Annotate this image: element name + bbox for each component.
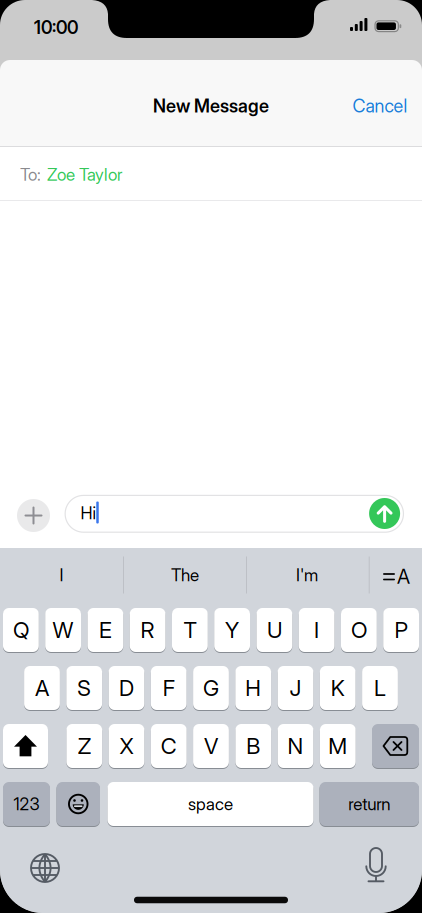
staticText: I	[314, 617, 319, 643]
button[interactable]: T	[172, 607, 208, 653]
staticText: R	[141, 617, 155, 643]
button[interactable]: S	[66, 665, 102, 711]
button[interactable]: To:	[0, 148, 422, 201]
staticText: A	[397, 564, 410, 589]
button[interactable]: Y	[214, 607, 250, 653]
button[interactable]	[56, 781, 100, 827]
staticText: H	[245, 675, 261, 701]
staticText: 123	[13, 794, 39, 814]
button[interactable]: The	[124, 552, 246, 598]
button[interactable]: X	[109, 723, 144, 769]
button[interactable]: P	[383, 607, 419, 653]
button[interactable]: A	[379, 564, 417, 588]
button[interactable]: V	[193, 723, 229, 769]
staticText: Y	[225, 617, 239, 643]
staticText: F	[163, 675, 175, 701]
staticText: V	[204, 733, 218, 759]
button[interactable]	[3, 723, 48, 769]
staticText: W	[53, 617, 74, 643]
button[interactable]: C	[151, 723, 187, 769]
staticText: Hi	[80, 503, 96, 523]
staticText: G	[203, 675, 219, 701]
button[interactable]: return	[319, 781, 419, 827]
staticText: To:	[20, 164, 41, 185]
button[interactable]: space	[107, 781, 313, 827]
staticText: S	[77, 675, 91, 701]
button[interactable]: E	[87, 607, 123, 653]
button[interactable]: N	[278, 723, 313, 769]
button[interactable]	[23, 846, 67, 890]
button[interactable]: Z	[66, 723, 102, 769]
staticText: 10:00	[34, 17, 78, 38]
button[interactable]: K	[320, 665, 356, 711]
staticText: New Message	[153, 95, 269, 117]
button[interactable]: M	[320, 723, 356, 769]
button[interactable]: H	[235, 665, 271, 711]
button[interactable]: R	[130, 607, 165, 653]
button[interactable]: W	[45, 607, 81, 653]
button[interactable]: L	[362, 665, 398, 711]
staticText: J	[289, 675, 301, 701]
staticText: O	[351, 617, 367, 643]
staticText: The	[171, 565, 199, 585]
button[interactable]	[369, 498, 400, 529]
staticText: X	[119, 733, 133, 759]
staticText: P	[395, 617, 408, 643]
staticText: C	[161, 733, 177, 759]
staticText: N	[287, 733, 303, 759]
button[interactable]	[354, 845, 398, 889]
button[interactable]: I	[0, 552, 123, 598]
staticText: Zoe Taylor	[47, 164, 122, 185]
staticText: B	[246, 733, 260, 759]
staticText: Z	[78, 733, 91, 759]
button[interactable]: F	[151, 665, 187, 711]
button[interactable]: Q	[3, 607, 39, 653]
staticText: E	[99, 617, 112, 643]
staticText: T	[183, 617, 196, 643]
staticText: Cancel	[352, 95, 407, 117]
staticText: M	[328, 733, 347, 759]
button[interactable]: O	[341, 607, 377, 653]
staticText: Q	[13, 617, 29, 643]
button[interactable]: I	[299, 607, 334, 653]
staticText: K	[331, 675, 345, 701]
staticText: D	[119, 675, 134, 701]
button[interactable]: B	[235, 723, 271, 769]
button[interactable]: I'm	[246, 552, 368, 598]
staticText: space	[188, 794, 233, 814]
staticText: L	[374, 675, 386, 701]
staticText: I	[59, 565, 63, 585]
button[interactable]: J	[278, 665, 313, 711]
staticText: A	[35, 675, 49, 701]
button[interactable]: U	[256, 607, 292, 653]
button[interactable]: G	[193, 665, 229, 711]
staticText: U	[267, 617, 282, 643]
button[interactable]: Cancel	[327, 91, 407, 121]
button[interactable]: D	[109, 665, 144, 711]
button[interactable]	[372, 723, 419, 769]
button[interactable]	[17, 499, 50, 532]
staticText: return	[348, 794, 390, 814]
staticText: I'm	[296, 565, 318, 585]
button[interactable]: 123	[3, 781, 50, 827]
button[interactable]: A	[24, 665, 60, 711]
